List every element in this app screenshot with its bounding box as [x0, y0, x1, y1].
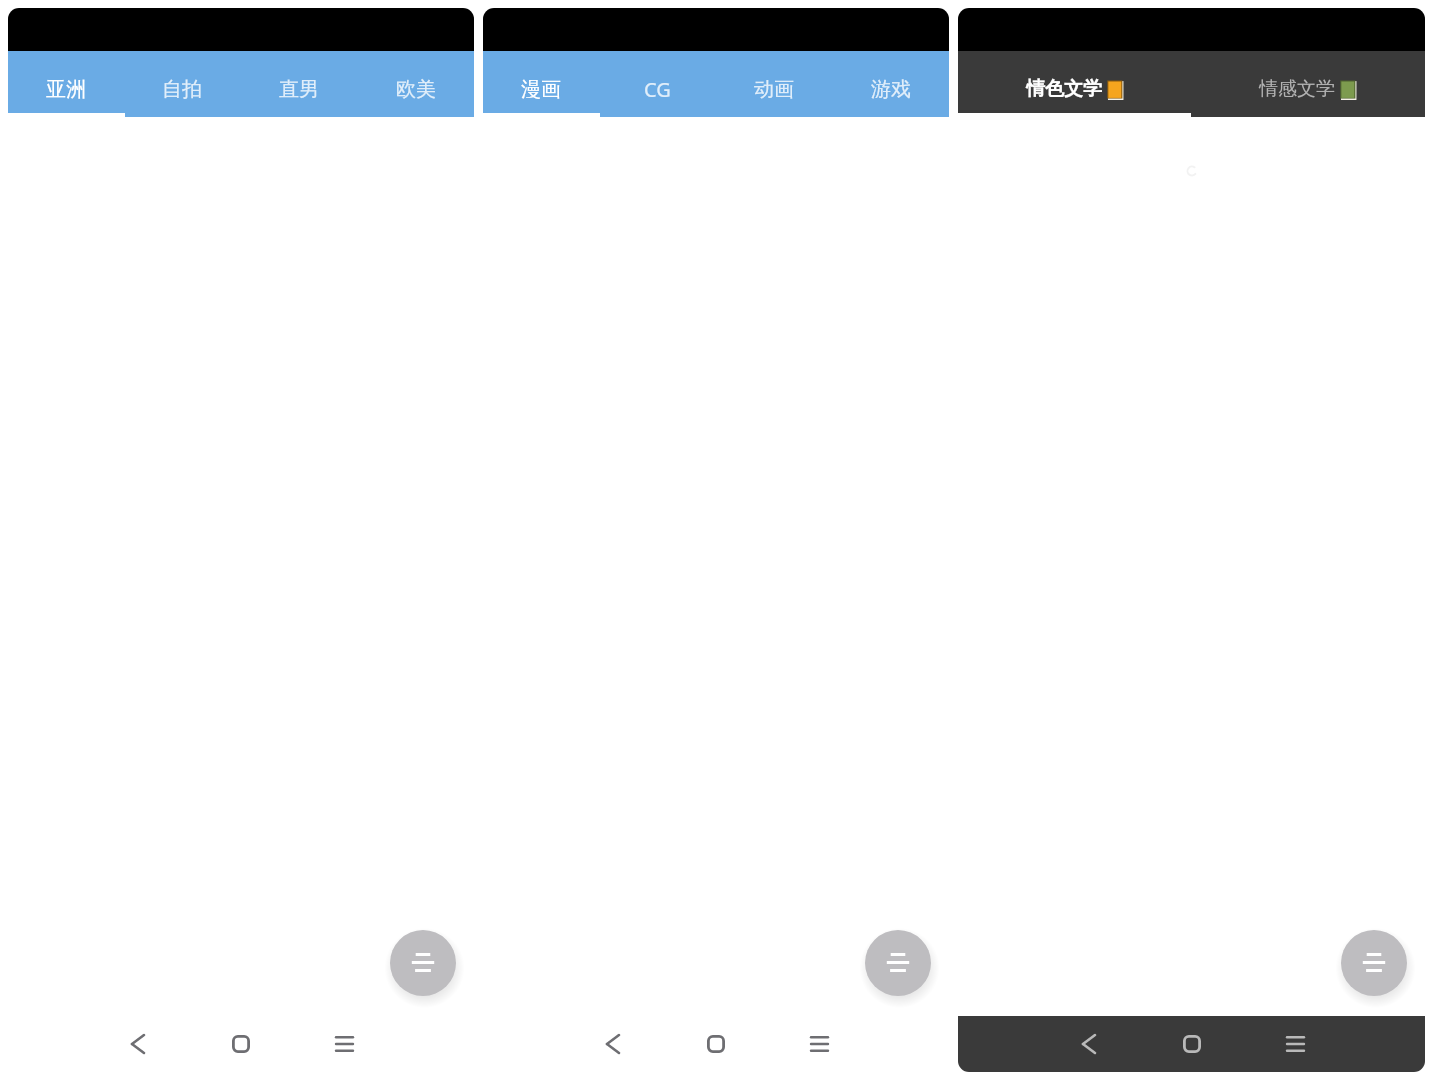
button[interactable]: 情感文学: [1191, 51, 1425, 117]
staticText: 游戏: [871, 77, 911, 102]
button[interactable]: Recent apps: [1262, 1016, 1328, 1072]
button[interactable]: 情色文学: [958, 51, 1191, 117]
button[interactable]: 游戏: [832, 51, 949, 117]
button[interactable]: Menu: [390, 930, 456, 996]
button[interactable]: Menu: [865, 930, 931, 996]
button[interactable]: Recent apps: [311, 1016, 377, 1072]
button[interactable]: 自拍: [124, 51, 240, 117]
button[interactable]: 漫画: [483, 51, 599, 117]
button[interactable]: Home: [1159, 1016, 1225, 1072]
button[interactable]: 直男: [240, 51, 357, 117]
staticText: 漫画: [521, 77, 561, 102]
staticText: 亚洲: [46, 77, 86, 102]
button[interactable]: Recent apps: [786, 1016, 852, 1072]
button[interactable]: 亚洲: [8, 51, 124, 117]
staticText: CG: [644, 76, 671, 103]
staticText: 欧美: [396, 77, 436, 102]
button[interactable]: Back: [580, 1016, 646, 1072]
staticText: 自拍: [162, 77, 202, 102]
staticText: 情感文学: [1259, 77, 1335, 101]
button[interactable]: 动画: [715, 51, 832, 117]
button[interactable]: Menu: [1341, 930, 1407, 996]
staticText: 动画: [754, 77, 794, 102]
button[interactable]: 欧美: [357, 51, 474, 117]
staticText: 直男: [279, 77, 319, 102]
button[interactable]: Home: [208, 1016, 274, 1072]
button[interactable]: CG: [599, 51, 715, 117]
button[interactable]: Back: [1056, 1016, 1122, 1072]
button[interactable]: Home: [683, 1016, 749, 1072]
staticText: 情色文学: [1026, 77, 1102, 101]
button[interactable]: Back: [105, 1016, 171, 1072]
